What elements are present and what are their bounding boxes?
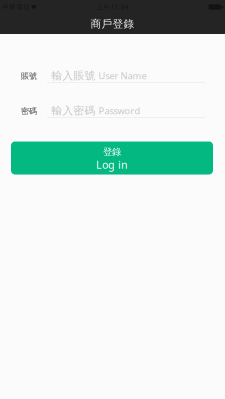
staticText: 登錄 bbox=[103, 146, 121, 158]
button[interactable]: 登錄 bbox=[11, 141, 213, 174]
staticText: 賬號 bbox=[21, 71, 37, 81]
button[interactable]: 賬號 User Name bbox=[11, 69, 213, 83]
staticText: Password bbox=[98, 104, 140, 117]
staticText: 上午11:34 bbox=[96, 3, 128, 11]
staticText: 中華電信 bbox=[2, 3, 30, 11]
staticText: User Name bbox=[98, 69, 146, 82]
button[interactable]: 密碼 Password bbox=[11, 104, 213, 118]
staticText: Log in bbox=[96, 158, 128, 172]
staticText: 輸入密碼 bbox=[51, 104, 95, 117]
staticText: 密碼 bbox=[21, 106, 37, 116]
staticText: 輸入賬號 bbox=[51, 69, 95, 82]
staticText: 商戶登錄 bbox=[90, 17, 134, 30]
